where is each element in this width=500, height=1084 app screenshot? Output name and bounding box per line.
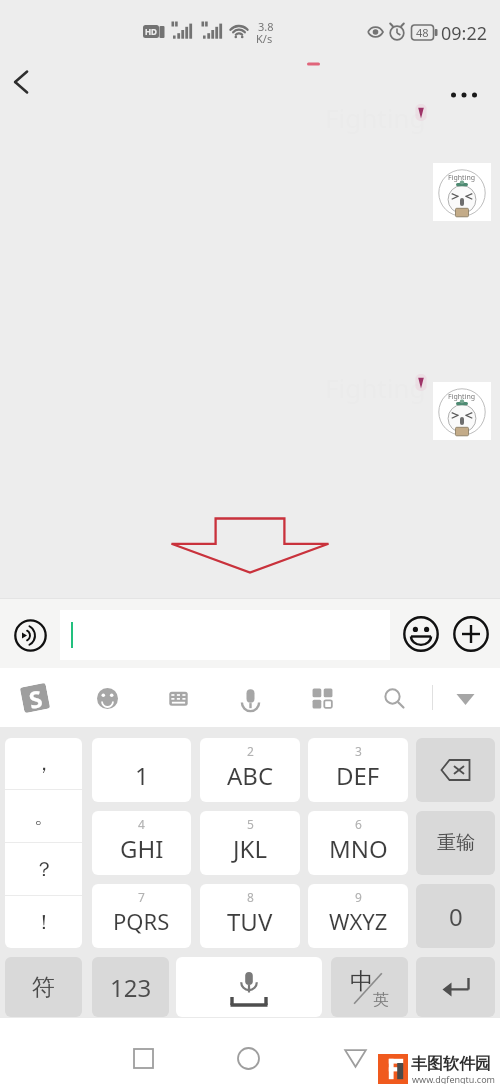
button[interactable]: ？ bbox=[5, 843, 82, 895]
button[interactable]: Voice bbox=[226, 674, 274, 722]
button[interactable]: Recent apps bbox=[118, 1033, 168, 1083]
staticText: 2 bbox=[247, 743, 254, 759]
button[interactable]: ， bbox=[5, 738, 82, 789]
staticText: 8 bbox=[247, 889, 254, 905]
staticText: 09:22 bbox=[441, 21, 488, 46]
staticText: 丰图软件园 bbox=[411, 1054, 491, 1074]
staticText: K/s bbox=[256, 31, 273, 46]
button[interactable]: Emoji bbox=[83, 674, 131, 722]
staticText: 3 bbox=[355, 743, 362, 759]
button[interactable]: ！ bbox=[5, 896, 82, 948]
button[interactable]: 3 bbox=[308, 738, 408, 802]
button[interactable]: Back bbox=[330, 1033, 380, 1083]
staticText: 7 bbox=[138, 889, 145, 905]
staticText: 重输 bbox=[437, 831, 475, 855]
staticText: 符 bbox=[32, 973, 55, 1002]
staticText: JKL bbox=[233, 832, 267, 865]
button[interactable]: Sogou input bbox=[11, 674, 59, 722]
button[interactable]: Backspace bbox=[416, 738, 495, 802]
staticText: ABC bbox=[227, 759, 274, 792]
staticText: ， bbox=[34, 751, 54, 776]
button[interactable]: More options bbox=[436, 67, 492, 123]
button[interactable]: Sticker message bbox=[433, 163, 491, 221]
button[interactable]: Back bbox=[0, 58, 48, 106]
button[interactable]: Apps bbox=[298, 674, 346, 722]
button[interactable]: 0 bbox=[416, 884, 495, 948]
button[interactable]: Emoji bbox=[399, 612, 443, 656]
button[interactable]: More functions bbox=[449, 612, 493, 656]
button[interactable]: Enter bbox=[416, 957, 495, 1017]
staticText: 9 bbox=[355, 889, 362, 905]
staticText: ？ bbox=[34, 857, 54, 882]
button[interactable]: Voice input bbox=[7, 612, 53, 658]
button[interactable]: 重输 bbox=[416, 811, 495, 875]
staticText: 4 bbox=[138, 816, 145, 832]
button[interactable]: Keyboard bbox=[154, 674, 202, 722]
button[interactable]: 8 bbox=[200, 884, 300, 948]
button[interactable]: Space bbox=[176, 957, 322, 1017]
button[interactable]: Search bbox=[370, 674, 418, 722]
staticText: 123 bbox=[110, 971, 152, 1004]
staticText: 5 bbox=[247, 816, 254, 832]
staticText: 中 bbox=[350, 967, 373, 996]
staticText: HD bbox=[145, 26, 157, 37]
button[interactable]: 9 bbox=[308, 884, 408, 948]
button[interactable]: 1 bbox=[92, 738, 191, 802]
staticText: 英 bbox=[373, 990, 389, 1010]
button[interactable]: 。 bbox=[5, 790, 82, 842]
staticText: PQRS bbox=[113, 906, 170, 936]
staticText: 6 bbox=[355, 816, 362, 832]
staticText: Fighting bbox=[325, 100, 426, 135]
staticText: MNO bbox=[329, 832, 388, 865]
staticText: TUV bbox=[227, 905, 273, 938]
staticText: ！ bbox=[34, 910, 54, 935]
button[interactable]: 7 bbox=[92, 884, 191, 948]
button[interactable]: 2 bbox=[200, 738, 300, 802]
button[interactable]: Hide keyboard bbox=[441, 674, 489, 722]
staticText: 1 bbox=[135, 759, 149, 792]
button[interactable]: 4 bbox=[92, 811, 191, 875]
staticText: Fighting bbox=[448, 173, 476, 183]
staticText: www.dgfengtu.com bbox=[412, 1073, 496, 1084]
staticText: WXYZ bbox=[329, 906, 388, 936]
button[interactable]: Chinese English toggle bbox=[331, 957, 408, 1017]
staticText: 0 bbox=[449, 900, 463, 933]
button[interactable]: 5 bbox=[200, 811, 300, 875]
staticText: Fighting bbox=[448, 392, 476, 402]
button[interactable]: Sticker message bbox=[433, 382, 491, 440]
staticText: S bbox=[27, 684, 44, 710]
button[interactable]: Home bbox=[223, 1033, 273, 1083]
button[interactable]: 符 bbox=[5, 957, 82, 1017]
staticText: DEF bbox=[336, 759, 380, 792]
button[interactable] bbox=[60, 610, 390, 660]
staticText: 3.8 bbox=[258, 19, 274, 34]
button[interactable]: 6 bbox=[308, 811, 408, 875]
button[interactable]: 123 bbox=[92, 957, 169, 1017]
staticText: 。 bbox=[34, 804, 54, 829]
staticText: 48 bbox=[416, 25, 429, 40]
staticText: GHI bbox=[120, 832, 164, 865]
staticText: Fighting bbox=[325, 370, 426, 405]
